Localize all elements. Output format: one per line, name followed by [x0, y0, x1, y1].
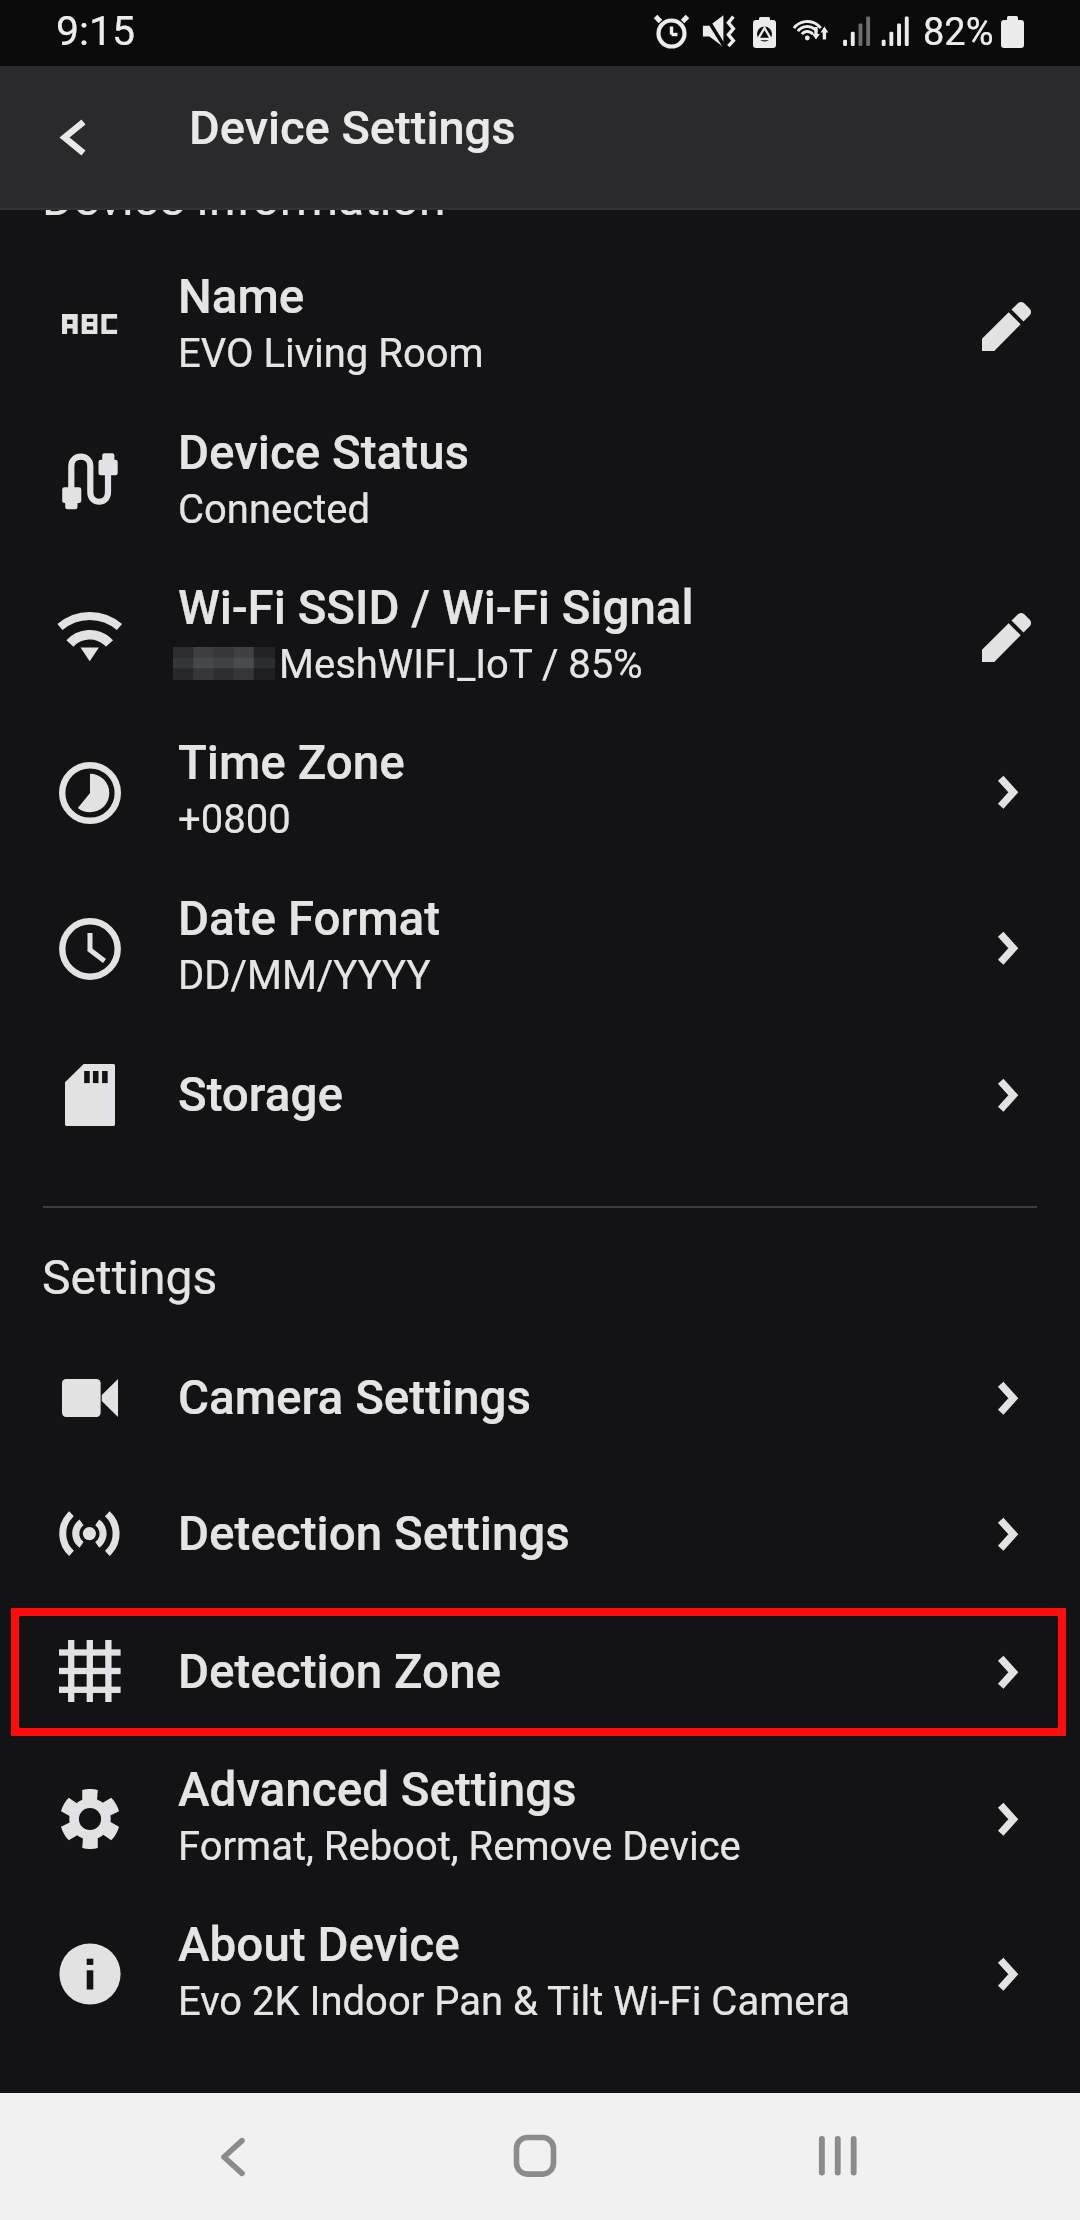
- button[interactable]: About Device: [0, 1891, 1080, 2047]
- button[interactable]: Date Format: [0, 865, 1080, 1021]
- staticText: Settings: [42, 1249, 218, 1305]
- button[interactable]: Storage: [0, 1041, 1080, 1137]
- staticText: Time Zone: [178, 735, 405, 791]
- staticText: Connected: [178, 486, 371, 533]
- staticText: Storage: [178, 1067, 343, 1123]
- staticText: Advanced Settings: [178, 1762, 577, 1818]
- staticText: Detection Zone: [178, 1644, 502, 1700]
- staticText: Device Settings: [189, 100, 516, 155]
- staticText: Detection Settings: [178, 1506, 570, 1562]
- staticText: MeshWIFI_IoT / 85%: [279, 641, 643, 688]
- button[interactable]: Edit: [972, 604, 1040, 672]
- button[interactable]: Device Status: [0, 399, 1080, 555]
- staticText: Date Format: [178, 891, 441, 947]
- staticText: DD/MM/YYYY: [178, 952, 431, 999]
- button[interactable]: Back: [202, 2127, 264, 2189]
- staticText: 82%: [923, 10, 994, 55]
- button[interactable]: Back: [30, 76, 118, 164]
- button[interactable]: Home: [504, 2126, 566, 2188]
- button[interactable]: Recent apps: [807, 2126, 869, 2188]
- button[interactable]: Detection Settings: [0, 1480, 1080, 1618]
- staticText: Name: [178, 269, 305, 325]
- button[interactable]: Wi-Fi SSID / Wi-Fi Signal: [0, 554, 1080, 694]
- staticText: Device Status: [178, 425, 470, 481]
- staticText: EVO Living Room: [178, 330, 484, 377]
- staticText: Device Information: [42, 170, 446, 226]
- button[interactable]: Name: [0, 243, 1080, 399]
- staticText: Format, Reboot, Remove Device: [178, 1823, 741, 1870]
- staticText: About Device: [178, 1917, 460, 1973]
- staticText: Camera Settings: [178, 1370, 531, 1426]
- button[interactable]: Detection Zone: [0, 1618, 1080, 1736]
- staticText: Wi-Fi SSID / Wi-Fi Signal: [178, 580, 694, 636]
- button[interactable]: Time Zone: [0, 709, 1080, 865]
- button[interactable]: Advanced Settings: [0, 1736, 1080, 1892]
- button[interactable]: Edit: [972, 293, 1040, 361]
- button[interactable]: Camera Settings: [0, 1344, 1080, 1480]
- staticText: +0800: [178, 796, 291, 843]
- staticText: Evo 2K Indoor Pan & Tilt Wi-Fi Camera: [178, 1978, 850, 2025]
- staticText: 9:15: [56, 7, 136, 55]
